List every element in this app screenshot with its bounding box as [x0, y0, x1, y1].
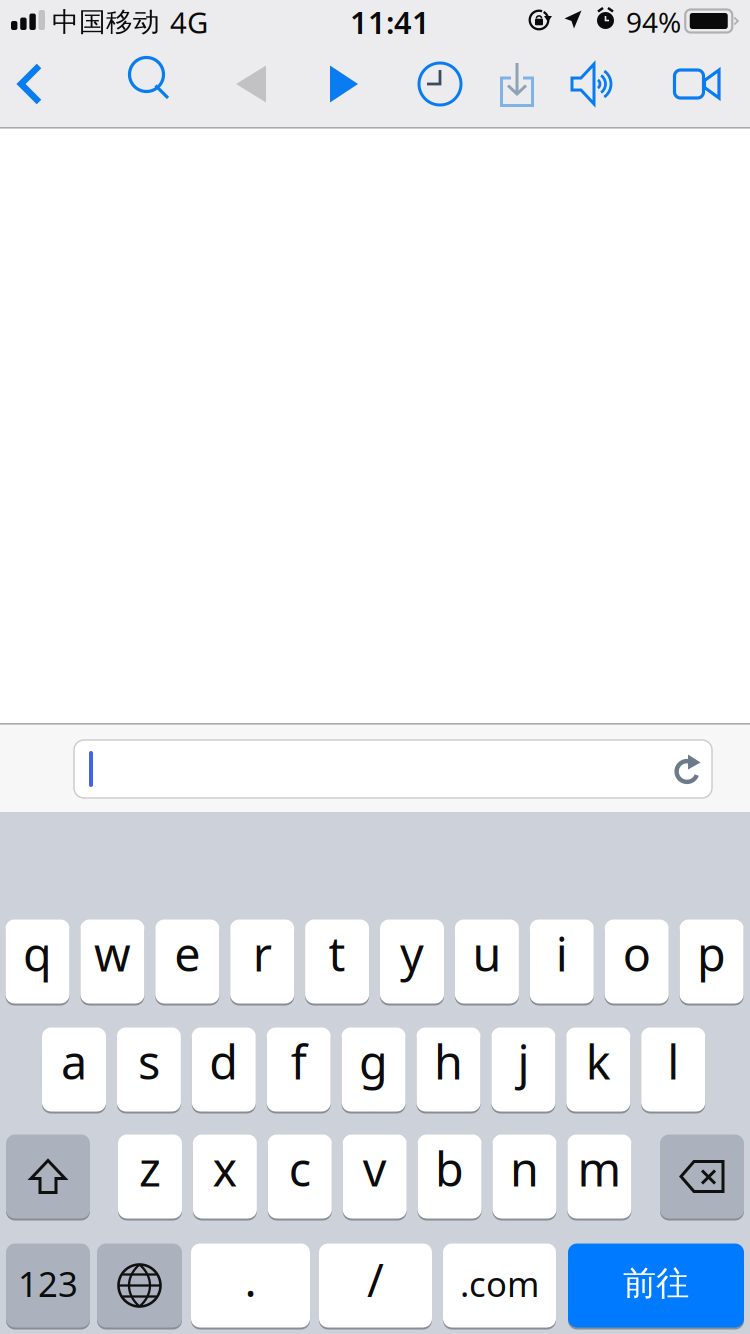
staticText: t	[329, 922, 346, 984]
staticText: z	[139, 1137, 161, 1199]
staticText: 前往	[623, 1263, 689, 1304]
button[interactable]: g	[342, 1026, 406, 1113]
staticText: u	[472, 922, 501, 984]
button[interactable]: h	[416, 1026, 480, 1113]
button[interactable]: .	[191, 1242, 310, 1329]
button[interactable]: /	[319, 1242, 432, 1329]
button[interactable]: Video	[672, 68, 722, 100]
button[interactable]: k	[566, 1026, 630, 1113]
staticText: h	[434, 1030, 463, 1092]
button[interactable]: 123	[6, 1242, 90, 1329]
staticText: 11:41	[350, 2, 430, 42]
staticText: m	[577, 1137, 621, 1199]
staticText: b	[435, 1137, 464, 1199]
staticText: 123	[18, 1260, 78, 1306]
staticText: a	[61, 1030, 87, 1092]
button[interactable]: e	[155, 918, 219, 1005]
button[interactable]: Play	[316, 62, 372, 106]
button[interactable]: s	[117, 1026, 181, 1113]
staticText: k	[586, 1030, 611, 1092]
staticText: c	[289, 1137, 311, 1199]
button[interactable]: l	[641, 1026, 705, 1113]
button[interactable]: Address field	[74, 740, 712, 798]
staticText: .com	[460, 1260, 539, 1306]
staticText: p	[697, 922, 726, 984]
button[interactable]: v	[343, 1133, 407, 1220]
button[interactable]: Shift	[6, 1133, 90, 1220]
button[interactable]: x	[193, 1133, 257, 1220]
button[interactable]: m	[567, 1133, 631, 1220]
staticText: y	[400, 922, 424, 984]
button[interactable]: History	[416, 60, 464, 108]
staticText: j	[517, 1030, 529, 1092]
button[interactable]: i	[530, 918, 594, 1005]
button[interactable]: o	[605, 918, 669, 1005]
staticText: /	[367, 1249, 384, 1310]
button[interactable]: Previous	[222, 62, 280, 106]
staticText: l	[667, 1030, 679, 1092]
staticText: e	[174, 922, 200, 984]
staticText: v	[363, 1137, 387, 1199]
staticText: 94%	[626, 3, 681, 41]
button[interactable]: w	[80, 918, 144, 1005]
staticText: w	[94, 922, 131, 984]
button[interactable]: j	[491, 1026, 555, 1113]
button[interactable]: r	[230, 918, 294, 1005]
staticText: .	[244, 1249, 256, 1310]
button[interactable]: y	[380, 918, 444, 1005]
button[interactable]: .com	[443, 1242, 556, 1329]
staticText: f	[291, 1030, 307, 1092]
staticText: o	[623, 922, 651, 984]
button[interactable]: Search	[124, 54, 176, 106]
button[interactable]: Sound	[569, 60, 617, 108]
button[interactable]: z	[118, 1133, 182, 1220]
button[interactable]: Download	[498, 59, 536, 109]
button[interactable]: c	[268, 1133, 332, 1220]
button[interactable]: b	[418, 1133, 482, 1220]
staticText: g	[359, 1030, 388, 1092]
staticText: s	[138, 1030, 160, 1092]
staticText: q	[23, 922, 52, 984]
staticText: x	[212, 1137, 237, 1199]
button[interactable]: a	[42, 1026, 106, 1113]
button[interactable]: n	[492, 1133, 556, 1220]
staticText: d	[209, 1030, 238, 1092]
button[interactable]: Back	[8, 63, 52, 105]
staticText: r	[253, 922, 272, 984]
button[interactable]: Switch keyboard	[97, 1242, 182, 1329]
staticText: n	[510, 1137, 539, 1199]
staticText: 中国移动	[52, 6, 160, 38]
button[interactable]: Delete	[660, 1133, 744, 1220]
staticText: 4G	[170, 2, 208, 41]
staticText: i	[556, 922, 568, 984]
button[interactable]: p	[680, 918, 744, 1005]
button[interactable]: t	[305, 918, 369, 1005]
button[interactable]: q	[5, 918, 69, 1005]
button[interactable]: d	[192, 1026, 256, 1113]
button[interactable]: f	[267, 1026, 331, 1113]
button[interactable]: 前往	[568, 1242, 744, 1329]
button[interactable]: u	[455, 918, 519, 1005]
